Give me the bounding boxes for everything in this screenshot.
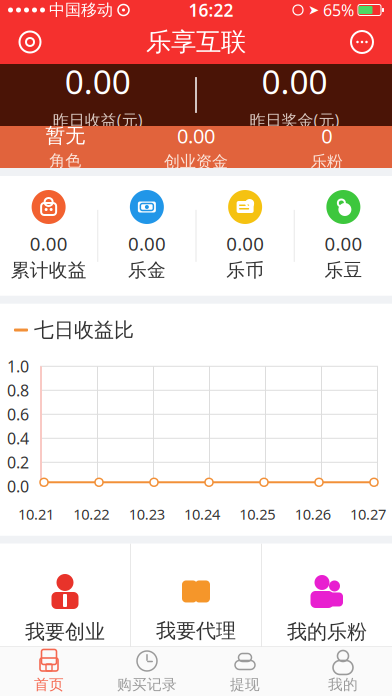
staticText: 10.25	[239, 504, 275, 524]
staticText: 我的	[328, 675, 358, 693]
staticText: 0.8	[7, 380, 29, 401]
button[interactable]: 首页	[0, 647, 98, 696]
button[interactable]: 提现	[196, 647, 294, 696]
button[interactable]: 0.00	[295, 190, 392, 282]
button[interactable]: 设置	[8, 20, 52, 64]
staticText: 0.6	[7, 404, 29, 425]
button[interactable]: 我的乐粉	[262, 544, 392, 674]
staticText: 昨日奖金(元)	[249, 109, 339, 131]
staticText: 累计收益	[11, 259, 87, 282]
staticText: 七日收益比	[34, 318, 134, 342]
staticText: 10.22	[73, 504, 109, 524]
staticText: 昨日收益(元)	[53, 109, 143, 131]
staticText: 创业资金	[164, 152, 228, 172]
staticText: 乐享互联	[146, 26, 246, 57]
staticText: 0.00	[324, 231, 362, 256]
button[interactable]: 购买记录	[98, 647, 196, 696]
staticText: 0.00	[65, 59, 131, 103]
staticText: ➤	[308, 2, 319, 17]
button[interactable]: 我要创业	[0, 544, 130, 674]
staticText: 10.27	[350, 504, 386, 524]
staticText: 65%	[323, 0, 354, 21]
staticText: 我的乐粉	[287, 619, 367, 644]
staticText: 我要创业	[25, 619, 105, 644]
staticText: 中国移动	[49, 0, 113, 20]
staticText: 0.2	[7, 452, 29, 473]
staticText: 0.00	[30, 231, 68, 256]
staticText: 购买记录	[117, 675, 177, 693]
staticText: 乐金	[128, 259, 166, 282]
staticText: 0.00	[177, 122, 215, 149]
staticText: 0.00	[128, 231, 166, 256]
staticText: 我要代理	[156, 618, 236, 643]
staticText: 乐币	[226, 259, 264, 282]
button[interactable]: 0.00	[98, 190, 195, 282]
staticText: 1.0	[7, 356, 29, 377]
staticText: 0	[321, 122, 332, 149]
button[interactable]: 0.00	[196, 190, 294, 282]
button[interactable]: 我要代理	[131, 544, 261, 674]
staticText: 0.4	[7, 428, 29, 449]
staticText: 10.26	[295, 504, 331, 524]
staticText: 0.00	[226, 231, 264, 256]
staticText: 首页	[34, 675, 64, 693]
button[interactable]: 0.00	[0, 190, 97, 282]
staticText: 乐豆	[324, 259, 362, 282]
staticText: 10.21	[18, 504, 54, 524]
staticText: 角色	[49, 151, 81, 171]
staticText: 10.23	[129, 504, 165, 524]
button[interactable]: 消息	[340, 20, 384, 64]
staticText: 0.00	[261, 59, 327, 103]
staticText: 0.0	[7, 476, 29, 497]
staticText: 乐粉	[311, 152, 343, 172]
staticText: 暂无	[45, 123, 85, 148]
staticText: 10.24	[184, 504, 220, 524]
staticText: 提现	[230, 675, 260, 693]
staticText: 16:22	[188, 0, 233, 21]
button[interactable]: 我的	[294, 647, 392, 696]
